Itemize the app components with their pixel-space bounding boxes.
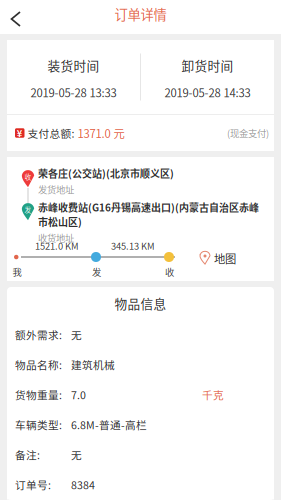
staticText: 无 xyxy=(71,327,82,342)
staticText: 345.13 KM xyxy=(111,239,155,252)
staticText: 收 xyxy=(165,265,174,278)
staticText: 6.8M-普通-高栏 xyxy=(71,417,147,432)
staticText: 备注: xyxy=(15,447,40,462)
staticText: 货物重量: xyxy=(15,387,62,402)
staticText: (现金支付) xyxy=(227,126,269,140)
staticText: 支付总额: xyxy=(27,125,74,141)
staticText: 装货时间 xyxy=(47,56,99,74)
staticText: 发 xyxy=(24,205,31,214)
staticText: 7.0 xyxy=(71,387,86,402)
staticText: 建筑机械 xyxy=(71,357,115,372)
staticText: 收 xyxy=(24,172,31,181)
staticText: 物品名称: xyxy=(15,357,62,372)
staticText: ¥ xyxy=(17,126,23,140)
staticText: 2019-05-28 14:33 xyxy=(164,84,250,100)
staticText: 无 xyxy=(71,447,82,462)
staticText: 地图 xyxy=(214,250,236,266)
staticText: 卸货时间 xyxy=(181,56,233,74)
staticText: 2019-05-28 13:33 xyxy=(30,84,116,100)
staticText: 我 xyxy=(12,265,21,278)
staticText: 收货地址 xyxy=(38,231,74,244)
staticText: 车辆类型: xyxy=(15,417,62,432)
staticText: 1521.0 KM xyxy=(35,239,79,252)
staticText: 物品信息 xyxy=(114,294,166,312)
staticText: 荣各庄(公交站)(北京市顺义区) xyxy=(38,166,174,180)
button[interactable]: 地图 xyxy=(199,250,236,266)
staticText: 发 xyxy=(92,265,101,278)
staticText: 1371.0 元 xyxy=(74,125,124,141)
staticText: 订单号: xyxy=(15,477,51,492)
button[interactable]: 返回 xyxy=(0,0,36,34)
staticText: 订单详情 xyxy=(114,4,166,24)
staticText: 赤峰收费站(G16丹锡高速出口)(内蒙古自治区赤峰市松山区) xyxy=(38,200,259,229)
staticText: 千克 xyxy=(202,387,224,402)
staticText: 发货地址 xyxy=(38,182,74,196)
staticText: 8384 xyxy=(71,477,95,492)
staticText: 额外需求: xyxy=(15,327,62,342)
